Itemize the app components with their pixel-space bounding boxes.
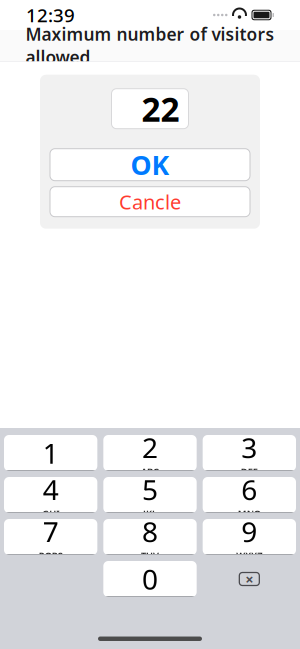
staticText: 3 [241, 429, 257, 466]
staticText: 22 [141, 87, 179, 131]
button[interactable]: 8 [103, 519, 197, 555]
staticText: ABC [141, 465, 159, 477]
button[interactable]: 2 [103, 435, 197, 471]
staticText: Cancle [119, 188, 181, 215]
staticText: WXYZ [236, 549, 262, 561]
staticText: 2 [142, 429, 158, 466]
button[interactable]: 1 [4, 435, 97, 471]
staticText: TUV [141, 549, 159, 561]
staticText: OK [130, 147, 169, 182]
staticText: 12:39 [26, 3, 75, 27]
button[interactable]: OK [50, 149, 250, 181]
button[interactable]: 3 [203, 435, 296, 471]
staticText: 1 [43, 434, 59, 472]
button[interactable]: Cancle [50, 187, 250, 217]
staticText: DEF [241, 465, 258, 477]
staticText: PQRS [39, 549, 63, 561]
button[interactable]: 9 [203, 519, 296, 555]
staticText: 5 [142, 471, 158, 508]
button[interactable]: 6 [203, 477, 296, 513]
button[interactable]: 4 [4, 477, 97, 513]
staticText: 8 [142, 513, 158, 550]
staticText: 0 [142, 560, 158, 598]
button[interactable]: 5 [103, 477, 197, 513]
button[interactable]: 7 [4, 519, 97, 555]
staticText: 6 [241, 471, 257, 508]
staticText: MNO [238, 507, 261, 519]
staticText: 4 [43, 471, 59, 508]
staticText: × [245, 569, 253, 589]
staticText: Maximum number of visitors allowed [25, 22, 274, 68]
staticText: JKL [143, 507, 157, 519]
button[interactable]: 0 [103, 561, 197, 597]
button[interactable]: Visitor count, 22 [111, 89, 188, 129]
staticText: 7 [43, 513, 59, 550]
staticText: 9 [241, 513, 257, 550]
button[interactable]: Delete [203, 561, 296, 597]
staticText: GHI [42, 507, 59, 519]
